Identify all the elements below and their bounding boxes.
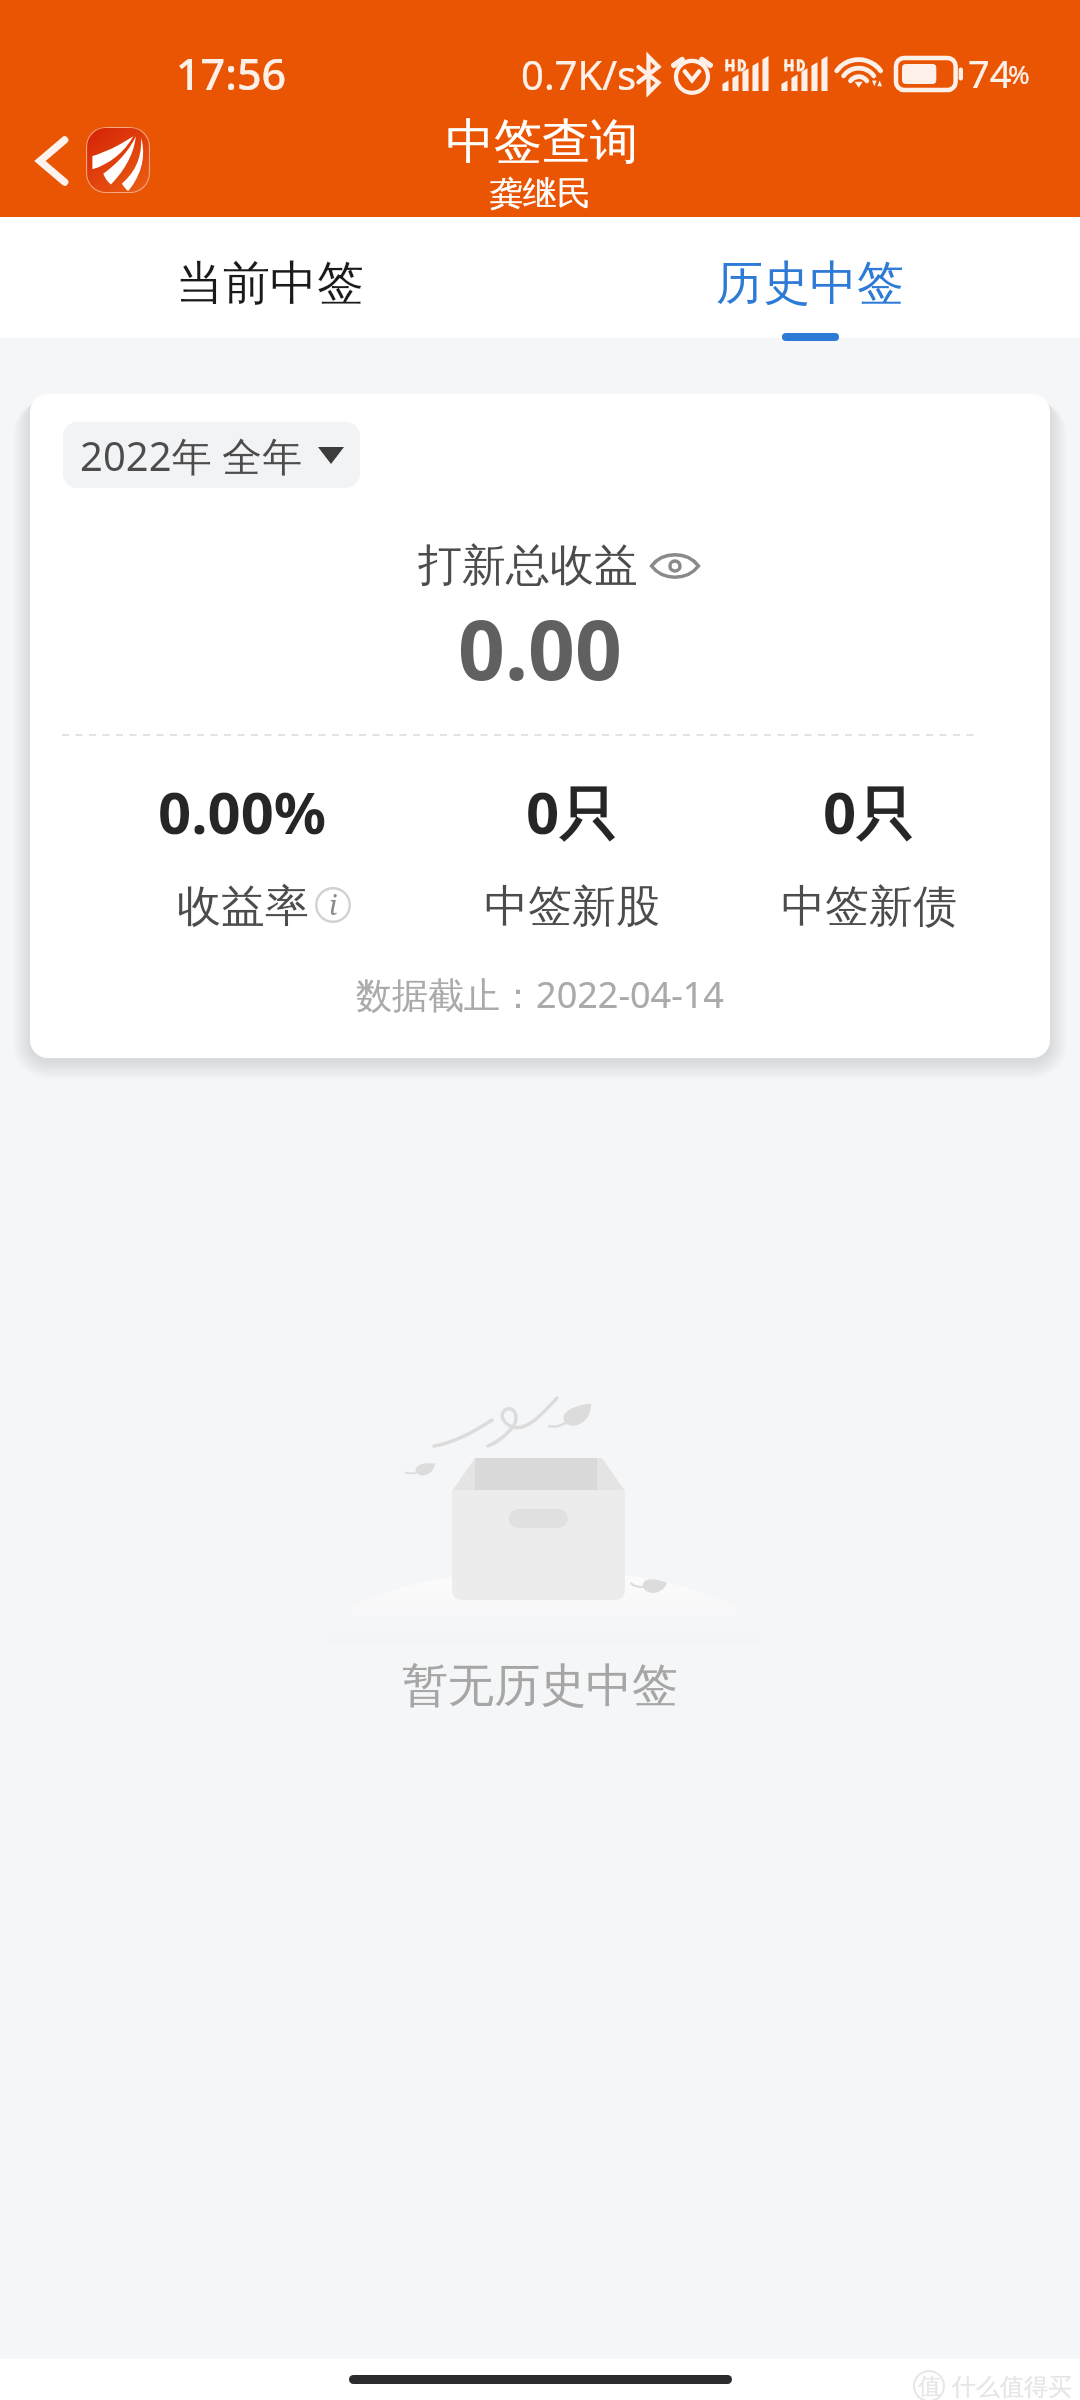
button[interactable]: 历史中签 [540, 217, 1080, 338]
staticText: 值 [918, 2372, 941, 2400]
staticText: % [1008, 56, 1030, 91]
staticText: 0.00% [158, 772, 327, 851]
staticText: 当前中签 [176, 254, 364, 313]
staticText: 龚继民 [489, 172, 591, 215]
staticText: 0只 [526, 772, 618, 851]
staticText: 74 [968, 47, 1012, 99]
button[interactable]: 0只 [699, 772, 1039, 934]
button[interactable]: Rate of return info [315, 887, 351, 923]
staticText: 中签新股 [484, 879, 660, 934]
staticText: 2022年 全年 [80, 428, 302, 483]
staticText: 打新总收益 [418, 538, 638, 593]
staticText: 数据截止：2022-04-14 [30, 970, 1050, 1019]
staticText: 暂无历史中签 [0, 1657, 1080, 1715]
staticText: 什么值得买 [952, 2372, 1072, 2400]
staticText: 17:56 [176, 44, 287, 103]
button[interactable]: Toggle amount visibility [647, 546, 703, 586]
button[interactable]: 2022年 全年 [63, 422, 360, 488]
button[interactable]: Back [16, 125, 88, 197]
button[interactable]: 当前中签 [0, 217, 540, 338]
staticText: 0只 [823, 772, 915, 851]
staticText: i [329, 886, 338, 922]
staticText: 0.7K/s [521, 47, 637, 101]
staticText: 中签查询 [446, 112, 638, 172]
button[interactable]: 0.00% [72, 772, 412, 934]
staticText: 历史中签 [716, 254, 904, 313]
staticText: 0.00 [30, 592, 1050, 704]
staticText: 中签新债 [781, 879, 957, 934]
button[interactable]: 0只 [402, 772, 742, 934]
button[interactable]: App home [86, 127, 150, 193]
staticText: 收益率 [177, 879, 309, 934]
